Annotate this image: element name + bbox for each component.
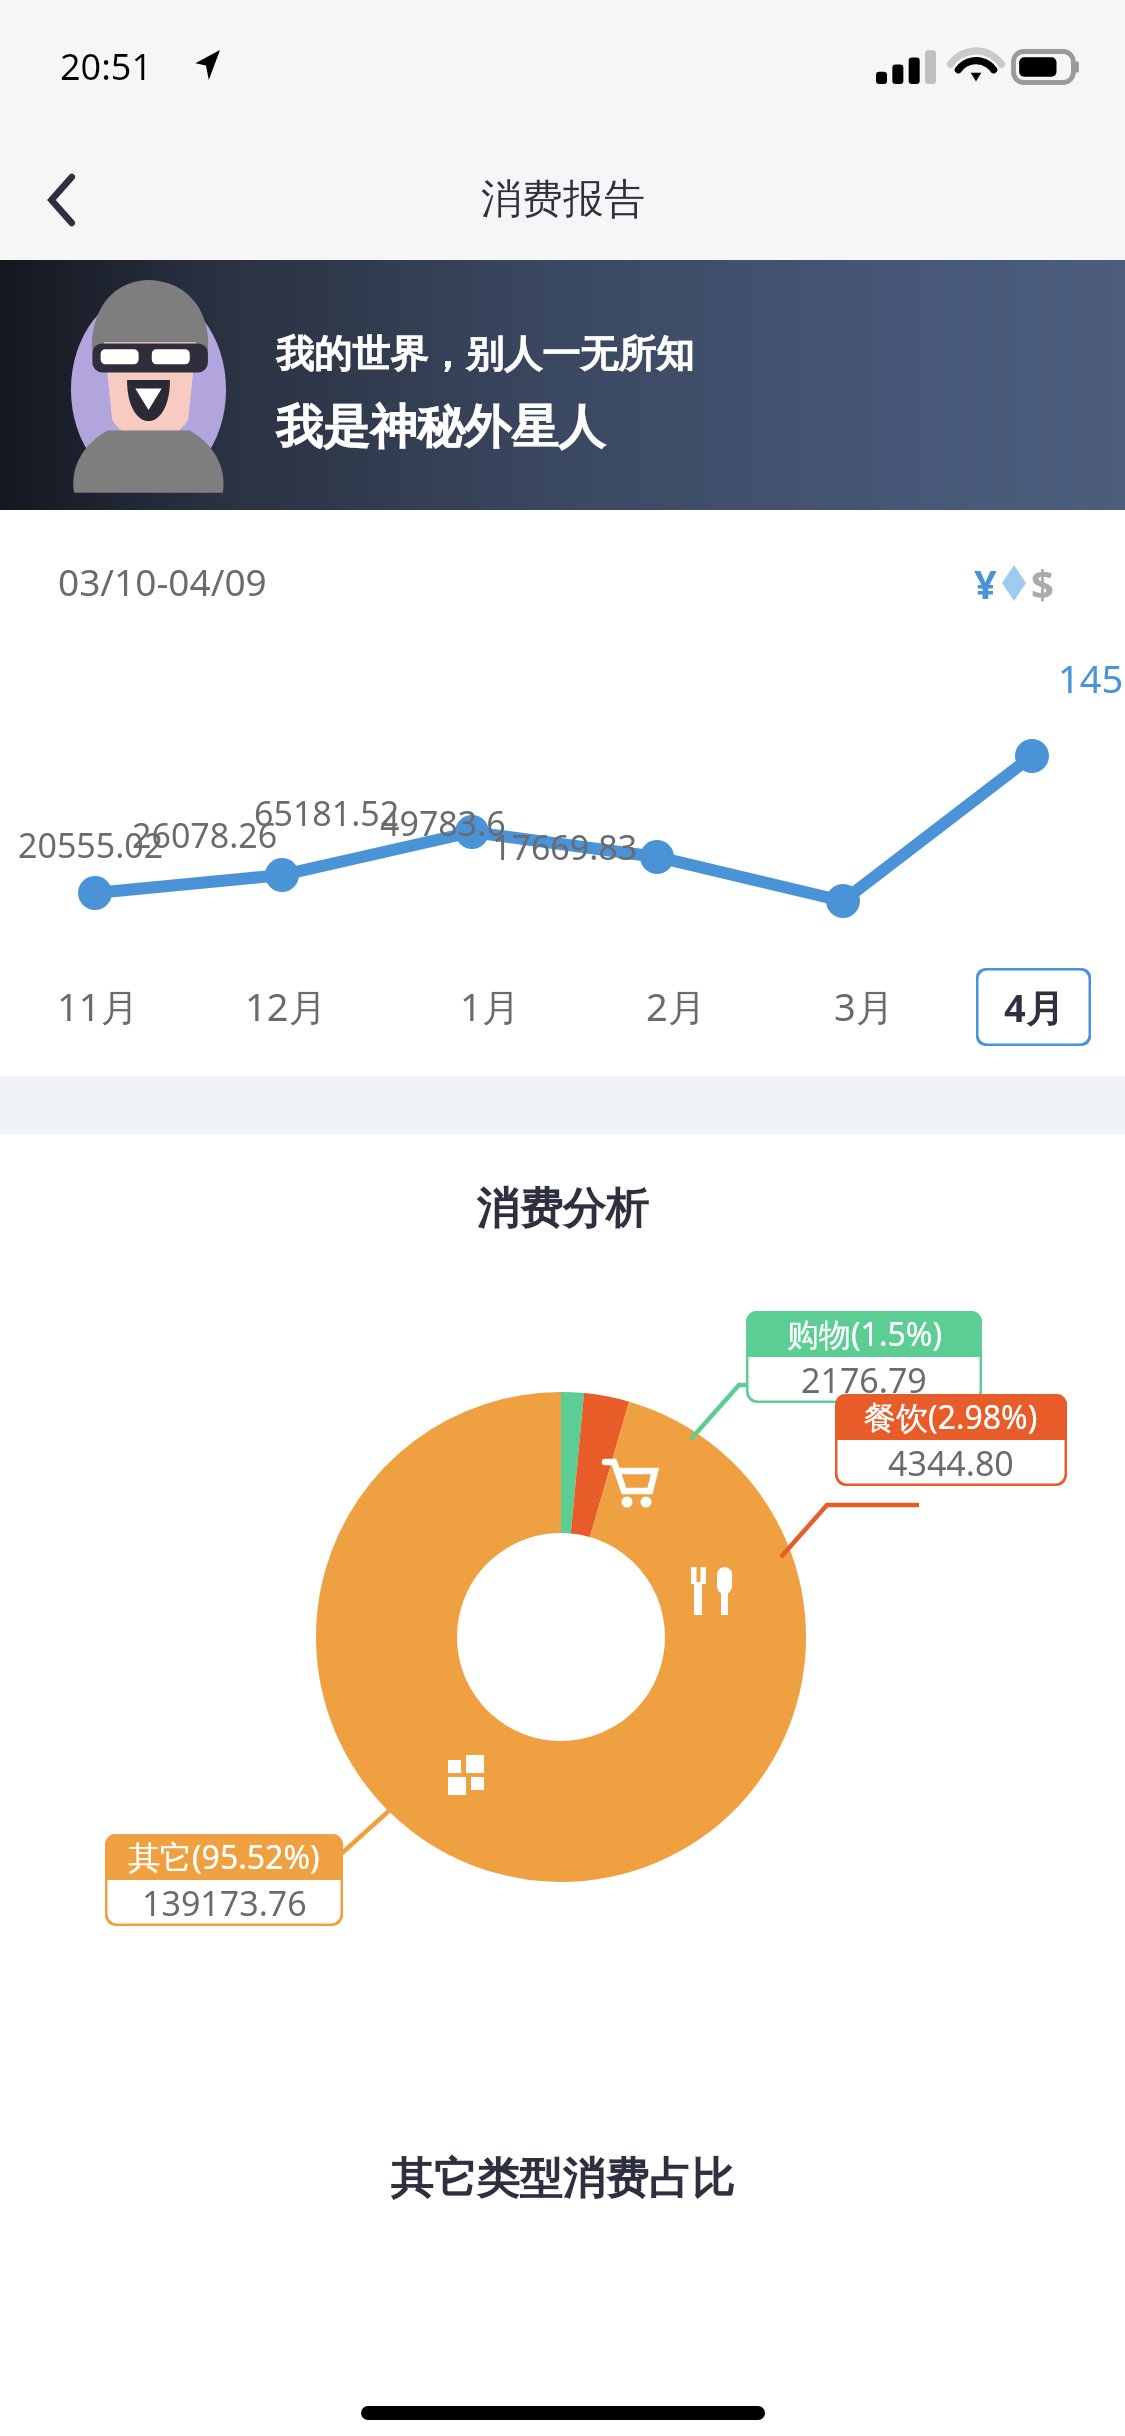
button[interactable]: 3月 xyxy=(814,966,914,1046)
staticText: 我的世界，别人一无所知 xyxy=(276,330,694,378)
staticText: 4344.80 xyxy=(888,1440,1014,1486)
staticText: 20:51 xyxy=(60,42,153,91)
staticText: 20555.02 xyxy=(18,822,164,868)
staticText: 26078.26 xyxy=(132,812,278,858)
staticText: 12月 xyxy=(245,980,327,1032)
staticText: 我是神秘外星人 xyxy=(276,398,605,457)
button[interactable]: 2月 xyxy=(626,966,726,1046)
button[interactable]: Back xyxy=(22,160,102,240)
button[interactable]: 12月 xyxy=(236,966,336,1046)
staticText: 03/10-04/09 xyxy=(58,556,267,606)
staticText: 其它类型消费占比 xyxy=(0,2152,1125,2206)
button[interactable]: 1月 xyxy=(440,966,540,1046)
staticText: 11月 xyxy=(57,980,139,1032)
staticText: 2176.79 xyxy=(801,1357,927,1403)
staticText: 17669.83 xyxy=(492,824,638,870)
staticText: 消费分析 xyxy=(0,1182,1125,1236)
button[interactable]: 4月 xyxy=(976,968,1091,1046)
staticText: 145695.35 xyxy=(1058,652,1125,704)
button[interactable]: 11月 xyxy=(48,966,148,1046)
staticText: 65181.52 xyxy=(254,790,400,836)
button[interactable]: 餐饮(2.98%) xyxy=(835,1394,1067,1486)
staticText: 1月 xyxy=(460,980,520,1032)
staticText: 139173.76 xyxy=(142,1880,307,1926)
button[interactable]: 我的世界，别人一无所知 xyxy=(0,260,1125,510)
staticText: 2月 xyxy=(646,980,706,1032)
staticText: 购物(1.5%) xyxy=(787,1312,942,1356)
staticText: 49783.6 xyxy=(380,800,506,846)
button[interactable]: 购物(1.5%) xyxy=(746,1311,982,1403)
staticText: 消费报告 xyxy=(481,174,645,226)
staticText: 3月 xyxy=(834,980,894,1032)
staticText: 餐饮(2.98%) xyxy=(864,1395,1038,1439)
staticText: ¥ xyxy=(974,556,997,610)
staticText: 4月 xyxy=(1004,981,1064,1033)
staticText: 其它(95.52%) xyxy=(128,1835,320,1879)
button[interactable]: 其它(95.52%) xyxy=(105,1834,343,1926)
staticText: $ xyxy=(1031,556,1054,610)
button[interactable]: ¥ xyxy=(968,550,1060,616)
